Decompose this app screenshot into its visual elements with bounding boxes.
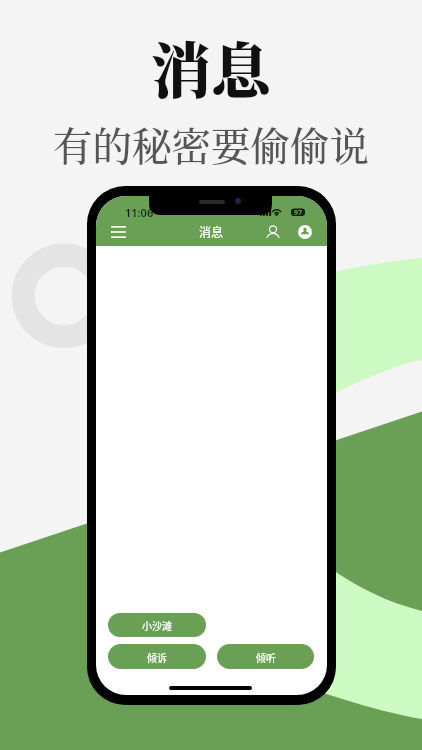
staticText: 消息: [151, 24, 271, 110]
button[interactable]: Menu: [104, 218, 132, 246]
staticText: 11:06: [125, 205, 154, 220]
staticText: 小沙滩: [142, 618, 172, 632]
staticText: 消息: [199, 223, 224, 240]
staticText: 有的秘密要偷偷说: [53, 116, 369, 173]
button[interactable]: 倾诉: [108, 644, 206, 669]
staticText: 倾听: [256, 650, 276, 664]
staticText: 97: [294, 208, 303, 216]
button[interactable]: 倾听: [217, 644, 314, 669]
staticText: 倾诉: [147, 650, 167, 664]
button[interactable]: 小沙滩: [108, 613, 206, 637]
button[interactable]: Contacts: [259, 218, 287, 246]
button[interactable]: Profile: [291, 218, 319, 246]
